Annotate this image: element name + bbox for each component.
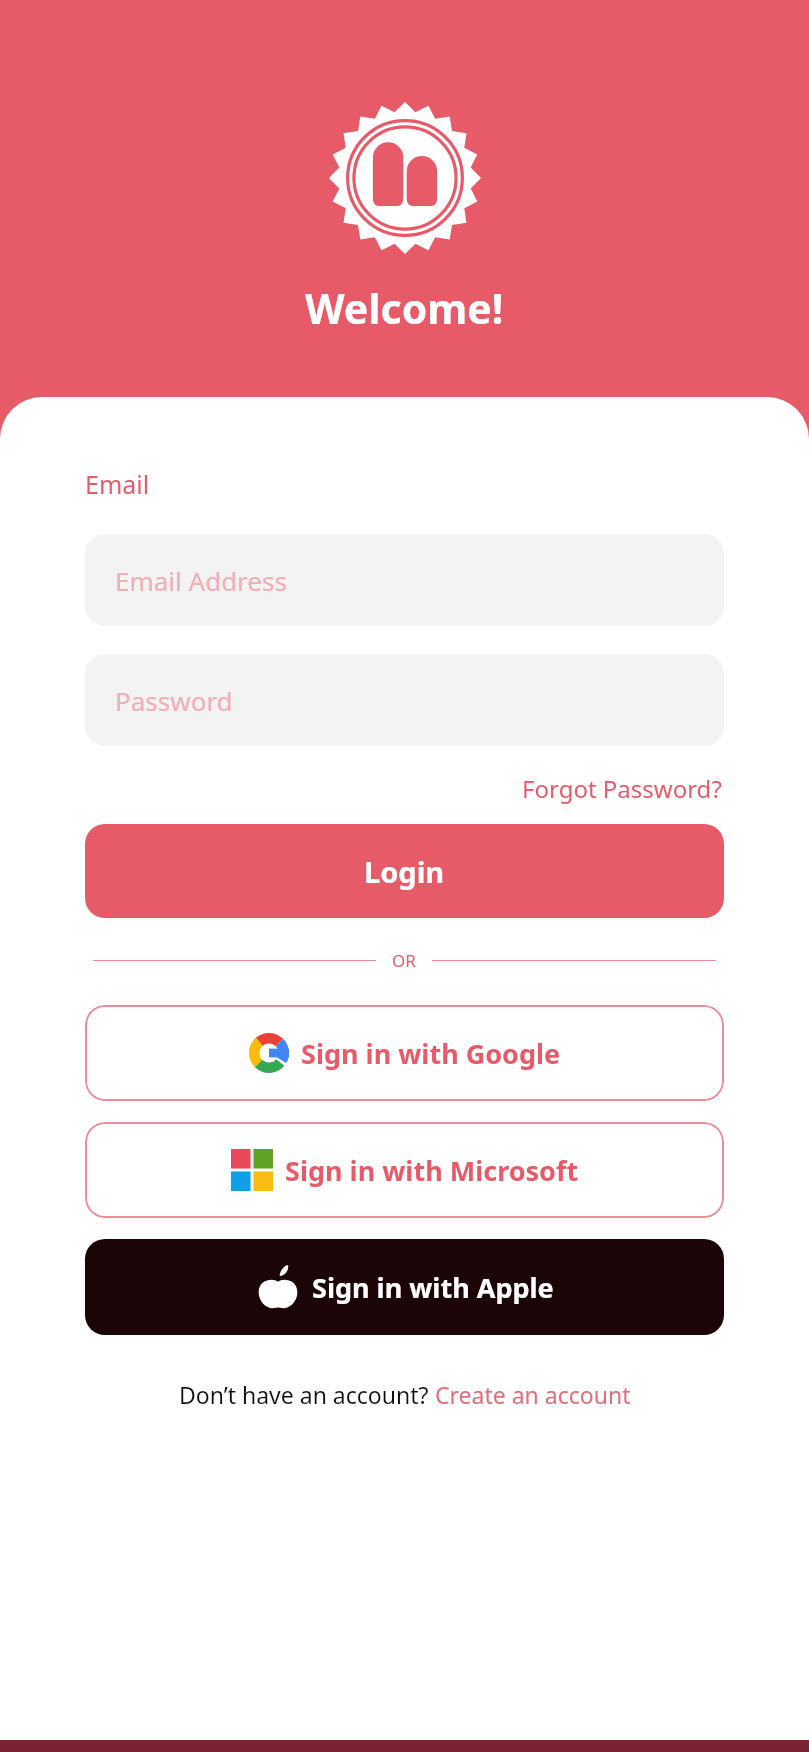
staticText: Email [85, 467, 150, 501]
other: Microsoft [231, 1149, 273, 1191]
staticText: Sign in with Microsoft [285, 1152, 579, 1189]
other: App logo [329, 102, 481, 254]
button[interactable]: Microsoft [85, 1122, 724, 1218]
staticText: Don’t have an account? [179, 1379, 435, 1410]
staticText: Password [115, 683, 233, 718]
button[interactable]: Don’t have an account? [85, 1379, 724, 1410]
other: Google [249, 1033, 289, 1073]
button[interactable]: Email Address [85, 534, 724, 626]
staticText: Create an account [435, 1379, 631, 1410]
button[interactable]: Apple [85, 1239, 724, 1335]
button[interactable]: Password [85, 654, 724, 746]
button[interactable]: Google [85, 1005, 724, 1101]
staticText: Email Address [115, 563, 287, 598]
staticText: Login [364, 852, 445, 891]
button[interactable]: Login [85, 824, 724, 918]
staticText: Sign in with Apple [312, 1269, 554, 1306]
staticText: Welcome! [305, 280, 504, 336]
button[interactable]: Forgot Password? [520, 770, 724, 807]
staticText: OR [392, 949, 416, 972]
staticText: Sign in with Google [301, 1035, 561, 1072]
other: Apple [256, 1265, 300, 1309]
